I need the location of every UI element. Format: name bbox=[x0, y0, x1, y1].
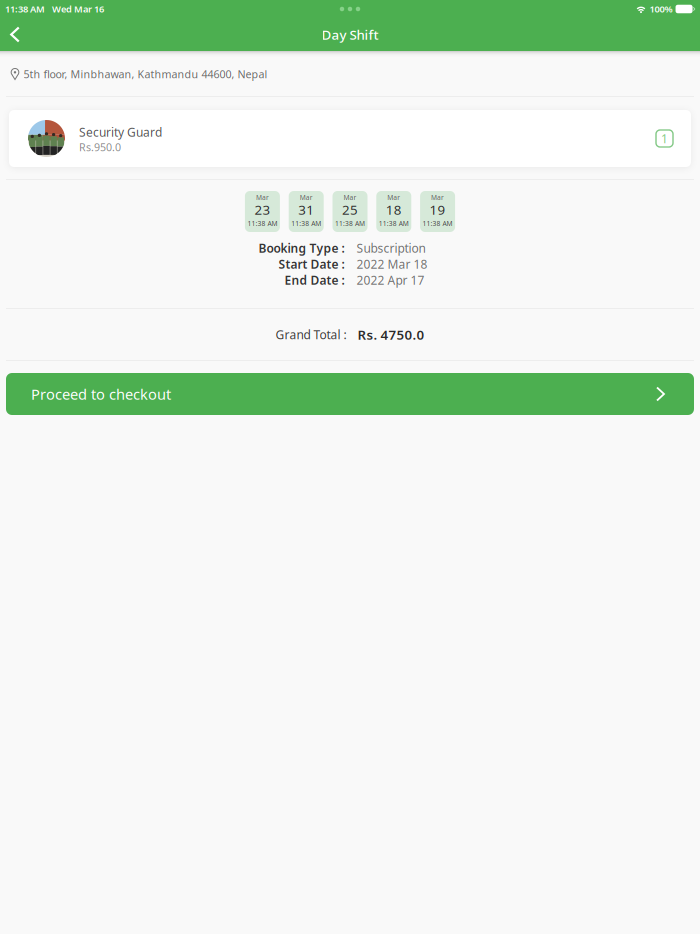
staticText: Mar bbox=[431, 193, 444, 202]
staticText: 2022 Apr 17 bbox=[356, 272, 424, 288]
staticText: Security Guard bbox=[79, 124, 162, 140]
staticText: Mar bbox=[387, 193, 400, 202]
staticText: Rs. 4750.0 bbox=[357, 326, 424, 343]
staticText: Mar bbox=[256, 193, 269, 202]
button[interactable]: Proceed to checkout bbox=[0, 361, 700, 415]
staticText: Day Shift bbox=[321, 26, 378, 43]
staticText: Rs.950.0 bbox=[79, 140, 121, 154]
button[interactable]: Back bbox=[0, 18, 30, 51]
staticText: 11:38 AM bbox=[335, 219, 365, 228]
staticText: Start Date : bbox=[278, 256, 344, 272]
staticText: 23 bbox=[254, 201, 270, 218]
staticText: 5th floor, Minbhawan, Kathmandu 44600, N… bbox=[23, 67, 267, 81]
staticText: Booking Type : bbox=[258, 240, 344, 256]
button[interactable]: Security Guard bbox=[0, 97, 700, 179]
staticText: 18 bbox=[386, 201, 402, 218]
staticText: 25 bbox=[342, 201, 358, 218]
staticText: 11:38 AM bbox=[5, 3, 45, 15]
staticText: Mar bbox=[300, 193, 313, 202]
staticText: 11:38 AM bbox=[379, 219, 409, 228]
staticText: Subscription bbox=[356, 240, 425, 256]
staticText: End Date : bbox=[284, 272, 344, 288]
staticText: 19 bbox=[430, 201, 446, 218]
staticText: 11:38 AM bbox=[291, 219, 321, 228]
staticText: 11:38 AM bbox=[423, 219, 453, 228]
staticText: 11:38 AM bbox=[247, 219, 277, 228]
staticText: Proceed to checkout bbox=[31, 384, 171, 404]
staticText: 31 bbox=[298, 201, 314, 218]
staticText: 100% bbox=[649, 3, 672, 15]
staticText: Wed Mar 16 bbox=[52, 3, 104, 15]
staticText: 1 bbox=[661, 130, 668, 146]
staticText: Grand Total : bbox=[275, 326, 346, 342]
staticText: Mar bbox=[343, 193, 356, 202]
staticText: 2022 Mar 18 bbox=[356, 256, 427, 272]
